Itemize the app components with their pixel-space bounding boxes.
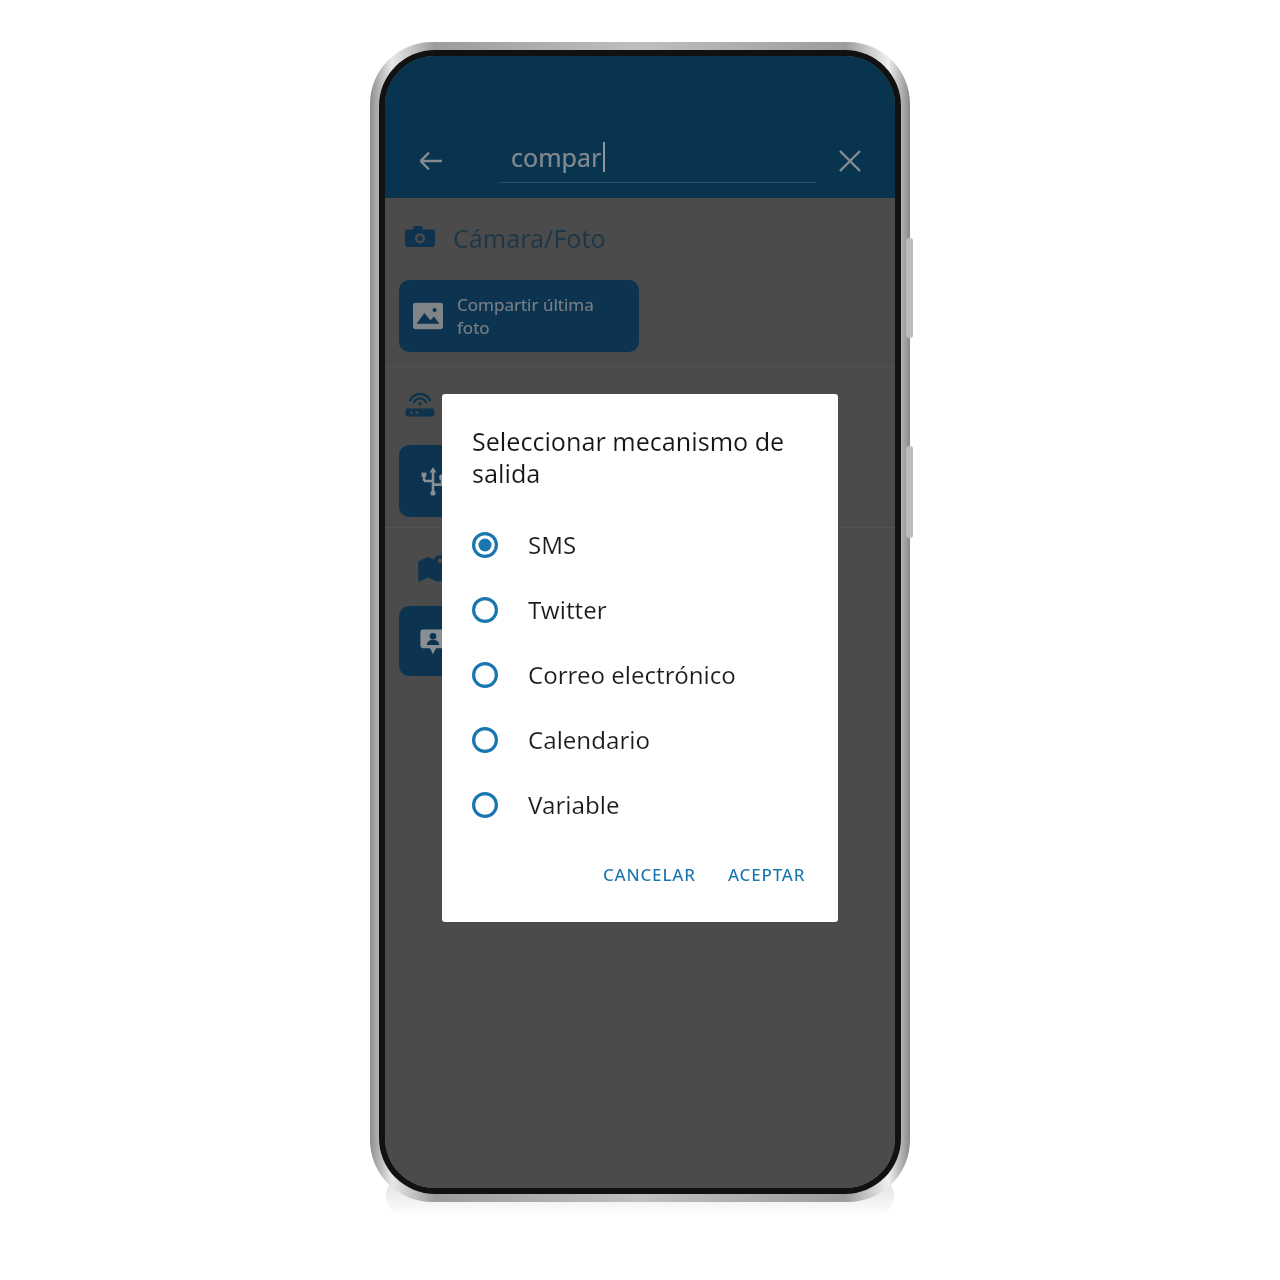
- staticText: ACEPTAR: [728, 863, 806, 886]
- staticText: Seleccionar mecanismo de salida: [472, 424, 808, 490]
- staticText: Compartir última foto: [457, 293, 625, 339]
- button[interactable]: Contact: [399, 606, 467, 676]
- staticText: compar: [511, 140, 602, 174]
- staticText: Twitter: [528, 593, 607, 626]
- button[interactable]: Back: [407, 137, 455, 185]
- staticText: Calendario: [528, 723, 651, 756]
- button[interactable]: SMS: [442, 512, 838, 577]
- button[interactable]: Variable: [442, 772, 838, 837]
- button[interactable]: Compartir última foto: [399, 280, 639, 352]
- button[interactable]: Calendario: [442, 707, 838, 772]
- staticText: CANCELAR: [603, 863, 696, 886]
- button[interactable]: CANCELAR: [593, 853, 706, 896]
- staticText: Correo electrónico: [528, 658, 736, 691]
- button[interactable]: USB: [399, 445, 467, 517]
- button[interactable]: ACEPTAR: [718, 853, 816, 896]
- button[interactable]: Map: [399, 540, 467, 596]
- staticText: Cámara/Foto: [453, 221, 606, 255]
- staticText: Conectividad: [453, 388, 605, 422]
- staticText: Variable: [528, 788, 620, 821]
- button[interactable]: Twitter: [442, 577, 838, 642]
- button[interactable]: Conectividad: [385, 379, 895, 431]
- button[interactable]: Correo electrónico: [442, 642, 838, 707]
- button[interactable]: Clear search: [827, 138, 873, 184]
- button[interactable]: Cámara/Foto: [385, 212, 895, 264]
- staticText: SMS: [528, 528, 577, 561]
